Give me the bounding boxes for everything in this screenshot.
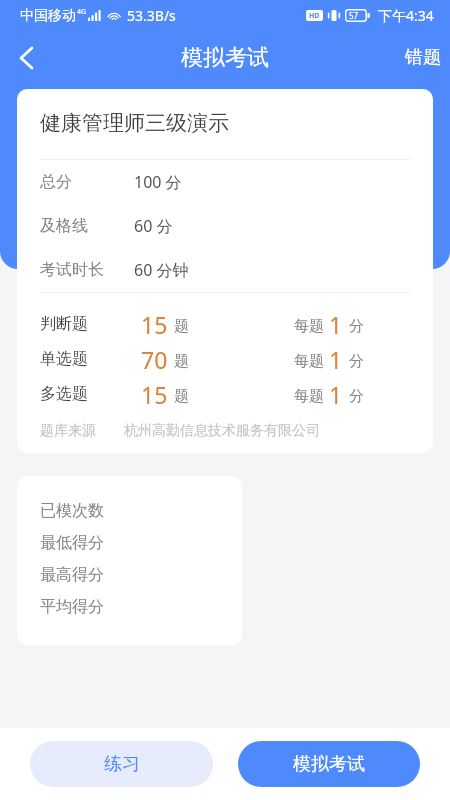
staticText: 模拟考试 [181,44,269,72]
staticText: 15 [141,379,168,410]
staticText: 已模次数 [40,501,104,521]
staticText: 考试时长 [40,260,134,280]
staticText: 1 [329,344,343,375]
staticText: 单选题 [40,349,141,369]
staticText: 多选题 [40,384,141,404]
staticText: HD [309,11,320,21]
button[interactable]: 模拟考试 [238,741,420,787]
staticText: 53.3B/s [127,6,176,25]
button[interactable]: Back [8,40,44,76]
button[interactable]: 平均得分 [40,591,242,623]
staticText: 健康管理师三级演示 [40,110,229,136]
staticText: 100 分 [134,171,182,193]
staticText: 分 [349,317,364,336]
staticText: 60 分 [134,215,173,237]
staticText: 60 分钟 [134,259,189,281]
staticText: 分 [349,352,364,371]
staticText: 错题 [405,46,441,69]
staticText: 模拟考试 [293,753,365,776]
staticText: 最高得分 [40,565,104,585]
staticText: 每题 [294,352,324,371]
staticText: 总分 [40,172,134,192]
staticText: 分 [349,387,364,406]
staticText: 题库来源 [40,422,96,440]
button[interactable]: 已模次数 [40,495,242,527]
staticText: 15 [141,309,168,340]
button[interactable]: 最低得分 [40,527,242,559]
staticText: 最低得分 [40,533,104,553]
staticText: 中国移动 [20,7,76,25]
staticText: 每题 [294,317,324,336]
staticText: 平均得分 [40,597,104,617]
button[interactable]: 练习 [30,741,213,787]
staticText: 70 [141,344,168,375]
staticText: 及格线 [40,216,134,236]
staticText: 杭州高勤信息技术服务有限公司 [124,422,320,440]
staticText: 练习 [104,753,140,776]
button[interactable]: 错题 [391,31,450,82]
staticText: 57 [349,10,359,21]
staticText: 判断题 [40,314,141,334]
staticText: 下午4:34 [378,6,434,25]
button[interactable]: 最高得分 [40,559,242,591]
staticText: 题 [174,387,189,406]
staticText: 1 [329,379,343,410]
staticText: 4G [77,7,87,17]
staticText: 题 [174,317,189,336]
staticText: 1 [329,309,343,340]
staticText: 每题 [294,387,324,406]
staticText: 题 [174,352,189,371]
